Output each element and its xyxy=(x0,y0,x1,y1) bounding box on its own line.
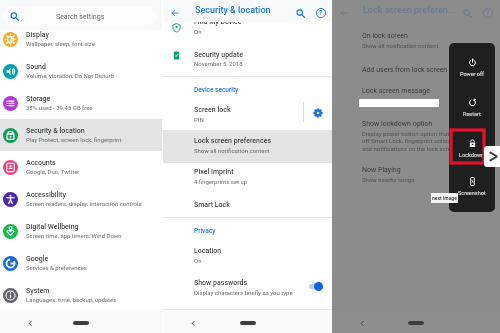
button[interactable]: Google xyxy=(0,247,162,279)
staticText: System xyxy=(26,287,50,295)
button[interactable]: Search xyxy=(459,5,476,22)
button[interactable]: System xyxy=(0,279,162,311)
button[interactable]: Sound xyxy=(0,55,162,87)
button[interactable]: On lock screen xyxy=(332,31,500,57)
button[interactable]: Screen lock settings xyxy=(307,102,328,123)
button[interactable]: Now Playing xyxy=(332,166,500,192)
button[interactable]: Storage xyxy=(0,87,162,119)
staticText: Lock screen preferen... xyxy=(363,5,456,16)
staticText: On xyxy=(194,28,202,35)
button[interactable]: Pixel Imprint xyxy=(163,164,332,190)
button[interactable]: Security & location xyxy=(0,119,162,151)
button[interactable]: Power off xyxy=(449,58,495,77)
button[interactable]: Back xyxy=(336,5,352,21)
staticText: On lock screen xyxy=(362,32,408,40)
staticText: Smart Lock xyxy=(194,201,230,209)
staticText: Lockdown xyxy=(459,152,485,158)
staticText: Google xyxy=(26,255,49,263)
staticText: Privacy xyxy=(194,227,216,235)
staticText: PIN xyxy=(194,116,204,123)
staticText: Languages, time, backup, updates xyxy=(26,296,117,303)
button[interactable]: Display xyxy=(0,23,162,55)
staticText: Location xyxy=(194,247,222,255)
staticText: Screen lock xyxy=(194,106,231,114)
staticText: Lock screen message xyxy=(362,87,430,95)
staticText: ? xyxy=(486,9,490,17)
staticText: Accounts xyxy=(26,159,56,167)
staticText: Show all notification content xyxy=(362,42,439,49)
staticText: Screenshot xyxy=(458,190,486,196)
button[interactable]: Security update xyxy=(163,46,332,72)
button[interactable]: Help xyxy=(479,4,496,21)
staticText: Restart xyxy=(463,111,481,117)
staticText: Device security xyxy=(194,86,239,94)
button[interactable]: Help xyxy=(312,4,329,21)
staticText: Accessibility xyxy=(26,191,66,199)
staticText: Security update xyxy=(194,51,243,59)
button[interactable]: Restart xyxy=(449,98,495,117)
button[interactable]: Back xyxy=(167,5,183,21)
staticText: Pixel Imprint xyxy=(194,168,234,176)
button[interactable]: Back xyxy=(187,317,200,330)
staticText: Screen time, app timers, Wind Down xyxy=(26,232,122,239)
staticText: Find My Device xyxy=(194,18,242,26)
staticText: Play Protect, screen lock, fingerprint xyxy=(26,136,122,143)
button[interactable]: Back xyxy=(356,317,369,330)
staticText: 4 fingerprints set up xyxy=(194,178,248,185)
staticText: Sound xyxy=(26,63,46,71)
button[interactable]: Digital Wellbeing xyxy=(0,215,162,247)
staticText: November 5, 2018 xyxy=(194,60,243,67)
staticText: Storage xyxy=(26,95,51,103)
staticText: Display characters briefly as you type xyxy=(194,289,293,296)
staticText: Screen readers, display, interaction con… xyxy=(26,200,142,207)
staticText: Add users from lock screen xyxy=(362,66,448,74)
staticText: Power off xyxy=(460,71,484,77)
staticText: Wallpaper, sleep, font size xyxy=(26,40,95,47)
staticText: Search settings xyxy=(56,13,105,21)
button[interactable]: Lockdown xyxy=(449,139,495,158)
staticText: Show passwords xyxy=(194,279,248,287)
staticText: Google, Duo, Twitter xyxy=(26,168,80,175)
button[interactable]: Location xyxy=(163,244,332,268)
staticText: Security & location xyxy=(26,127,85,135)
staticText: off Smart Lock, fingerprint unlocking, xyxy=(362,137,462,144)
staticText: Show all notification content xyxy=(194,147,270,154)
button[interactable]: Accounts xyxy=(0,151,162,183)
button[interactable]: Next image xyxy=(484,146,500,167)
staticText: Lock screen preferences xyxy=(194,137,272,145)
button[interactable]: Search settings xyxy=(3,7,157,26)
staticText: Volume, vibration, Do Not Disturb xyxy=(26,72,114,79)
staticText: Digital Wellbeing xyxy=(26,223,79,231)
button[interactable]: Add users from lock screen xyxy=(332,63,500,83)
staticText: and notifications on the lock screen xyxy=(362,145,458,152)
staticText: Services & preferences xyxy=(26,264,87,271)
staticText: ? xyxy=(319,9,323,17)
button[interactable]: Accessibility xyxy=(0,183,162,215)
staticText: Security & location xyxy=(195,5,271,16)
button[interactable]: Back xyxy=(24,317,37,330)
button[interactable]: Lock screen preferences xyxy=(163,130,332,163)
staticText: 38% used - 39.45 GB free xyxy=(26,104,93,111)
staticText: Display power button option that turns xyxy=(362,130,465,137)
staticText: Show lockdown option xyxy=(362,120,433,128)
button[interactable]: Search xyxy=(292,5,309,22)
staticText: Now Playing xyxy=(362,166,401,174)
button[interactable] xyxy=(163,104,296,130)
staticText: On xyxy=(194,257,202,264)
button[interactable]: Show lockdown option xyxy=(332,120,500,160)
button[interactable]: Show passwords xyxy=(163,276,332,302)
button[interactable]: Smart Lock xyxy=(163,196,332,216)
button[interactable]: Screenshot xyxy=(449,177,495,196)
staticText: Display xyxy=(26,31,49,39)
staticText: Show nearby songs xyxy=(362,176,415,183)
staticText: next image xyxy=(432,195,457,201)
button[interactable]: Find My Device xyxy=(163,14,332,36)
